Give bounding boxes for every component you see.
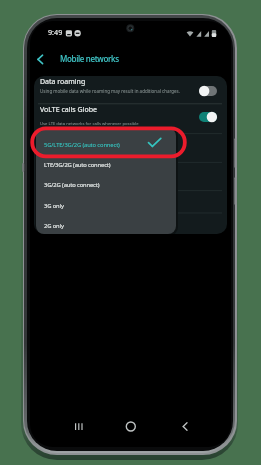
button[interactable] [120, 416, 142, 438]
button[interactable] [36, 170, 176, 190]
staticText: 3G only [44, 202, 64, 210]
button[interactable] [36, 150, 176, 170]
staticText: 3G/2G (auto connect) [44, 181, 100, 189]
staticText: 2G only [44, 222, 64, 230]
staticText: Use LTE data networks for calls whenever… [40, 121, 139, 127]
button[interactable] [34, 76, 227, 104]
button[interactable] [36, 210, 176, 230]
button[interactable] [34, 104, 227, 128]
button[interactable] [199, 112, 217, 122]
staticText: 5G/LTE/3G/2G (auto connect) [44, 141, 120, 149]
button[interactable] [33, 51, 49, 67]
button[interactable] [36, 190, 176, 210]
button[interactable] [36, 130, 176, 150]
staticText: VoLTE calls Globe [40, 105, 97, 115]
staticText: Data roaming [40, 77, 86, 87]
staticText: 9:49 [48, 27, 63, 37]
button[interactable] [199, 86, 217, 96]
staticText: Using mobile data while roaming may resu… [40, 88, 180, 94]
button[interactable] [66, 416, 88, 438]
button[interactable] [174, 416, 196, 438]
staticText: LTE/3G/2G (auto connect) [44, 161, 111, 169]
staticText: Mobile networks [60, 53, 119, 64]
